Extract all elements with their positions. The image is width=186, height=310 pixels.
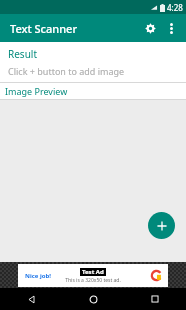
staticText: Image Preview [5, 85, 68, 97]
button[interactable]: Settings [140, 18, 160, 38]
staticText: Result [8, 47, 38, 61]
staticText: Test Ad [82, 268, 104, 276]
button[interactable]: Nice job! [0, 262, 186, 288]
staticText: Nice job! [25, 272, 51, 280]
staticText: This is a 320x50 test ad. [65, 277, 121, 284]
staticText: 4:28 [167, 2, 183, 13]
button[interactable]: Back [0, 288, 62, 310]
button[interactable]: More options [162, 19, 180, 37]
button[interactable]: Result [0, 42, 186, 82]
button[interactable]: Home [62, 288, 124, 310]
staticText: Text Scanner [10, 21, 78, 36]
button[interactable]: Recent apps [124, 288, 186, 310]
button[interactable]: Image Preview [0, 82, 186, 100]
button[interactable]: Add image [148, 212, 175, 239]
staticText: Click + button to add image [8, 65, 125, 77]
